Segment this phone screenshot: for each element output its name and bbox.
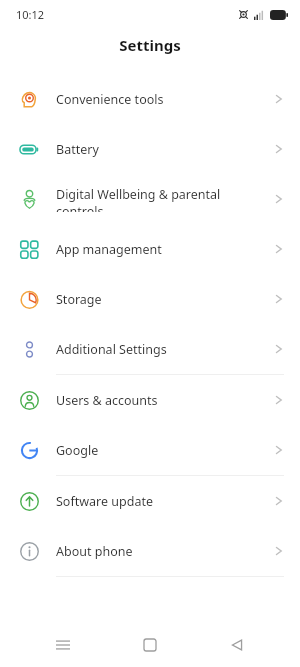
staticText: 10:12: [16, 7, 45, 22]
button[interactable]: Digital Wellbeing & parental controls: [0, 174, 300, 224]
button[interactable]: Software update: [0, 476, 300, 526]
staticText: Additional Settings: [56, 341, 262, 358]
staticText: Users & accounts: [56, 392, 262, 409]
staticText: Google: [56, 442, 262, 459]
button[interactable]: About phone: [0, 526, 300, 576]
staticText: Digital Wellbeing & parental controls: [56, 186, 262, 212]
button[interactable]: Additional Settings: [0, 324, 300, 374]
staticText: Storage: [56, 291, 262, 308]
staticText: App management: [56, 241, 262, 258]
button[interactable]: Back: [213, 623, 261, 667]
button[interactable]: Battery: [0, 124, 300, 174]
staticText: About phone: [56, 543, 262, 560]
staticText: Battery: [56, 141, 262, 158]
staticText: Convenience tools: [56, 91, 262, 108]
button[interactable]: Users & accounts: [0, 375, 300, 425]
staticText: Software update: [56, 493, 262, 510]
button[interactable]: Recents: [39, 623, 87, 667]
staticText: Settings: [119, 35, 181, 55]
button[interactable]: Google: [0, 425, 300, 475]
button[interactable]: Convenience tools: [0, 74, 300, 124]
button[interactable]: Storage: [0, 274, 300, 324]
button[interactable]: Home: [126, 623, 174, 667]
button[interactable]: App management: [0, 224, 300, 274]
